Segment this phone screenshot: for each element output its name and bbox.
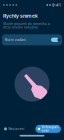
staticText: Ruční zadání	[5, 38, 26, 42]
staticText: Vložte proužek do rámečku a držte telefo…	[3, 22, 50, 29]
staticText: 9:41	[52, 3, 61, 7]
button[interactable]: Nastavení	[3, 125, 26, 133]
staticText: Rychlý snímek	[3, 13, 38, 19]
button[interactable]: Ruční zadání	[2, 34, 62, 45]
staticText: Nastavení	[9, 127, 25, 131]
button[interactable]: Vyfotografovat	[35, 125, 61, 133]
staticText: Vyfotografovat	[41, 125, 58, 133]
